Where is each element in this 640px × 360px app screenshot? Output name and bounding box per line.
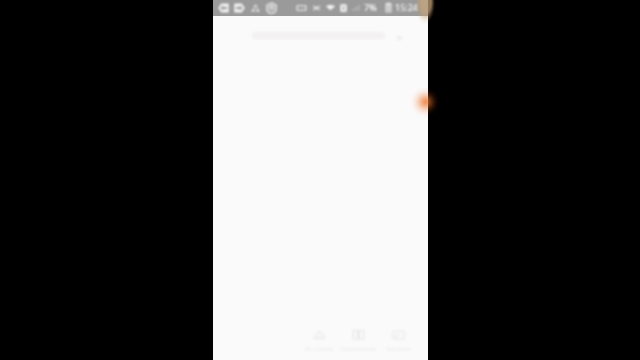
staticText: 15:24: [395, 1, 419, 13]
staticText: 7%: [364, 1, 377, 13]
button[interactable]: Ayuda: [412, 86, 427, 118]
